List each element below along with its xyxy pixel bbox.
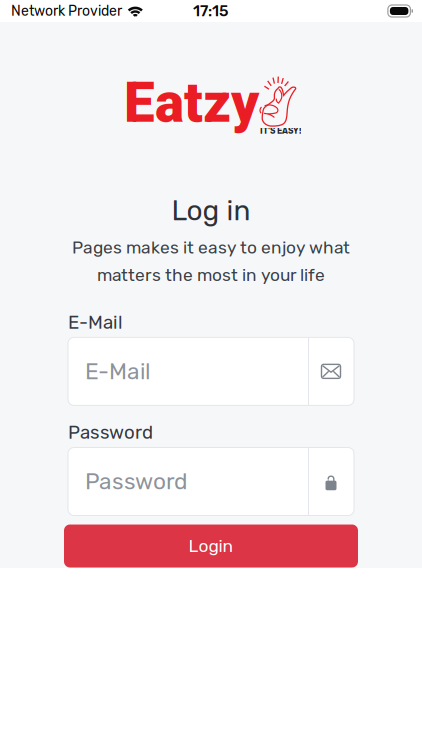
staticText: IT'S EASY!	[260, 126, 301, 136]
button[interactable]: Password	[68, 447, 354, 515]
staticText: Password	[68, 421, 153, 443]
staticText: Password	[85, 468, 187, 495]
staticText: Pages makes it easy to enjoy what	[72, 237, 350, 258]
staticText: matters the most in your life	[97, 265, 325, 285]
staticText: E-Mail	[68, 311, 123, 333]
button[interactable]: Login	[64, 524, 358, 567]
staticText: Eatzy	[124, 71, 259, 135]
staticText: E-Mail	[85, 358, 151, 385]
staticText: Log in	[171, 194, 250, 227]
staticText: Network Provider	[11, 3, 122, 19]
button[interactable]: E-Mail	[68, 337, 354, 405]
staticText: 17:15	[193, 2, 229, 20]
staticText: Login	[188, 536, 233, 556]
